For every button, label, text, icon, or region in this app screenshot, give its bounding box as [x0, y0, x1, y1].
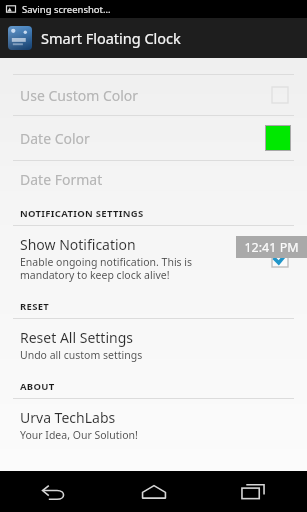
staticText: Urva TechLabs: [20, 408, 116, 427]
button[interactable]: Recent apps: [208, 471, 298, 512]
staticText: Saving screenshot…: [22, 3, 111, 16]
staticText: Undo all custom settings: [20, 348, 143, 362]
staticText: Show Notification: [20, 235, 136, 254]
staticText: NOTIFICATION SETTINGS: [20, 207, 144, 220]
staticText: Your Idea, Our Solution!: [20, 428, 138, 442]
button[interactable]: Back: [9, 471, 99, 512]
staticText: Date Format: [20, 170, 103, 189]
staticText: 12:41 PM: [244, 239, 299, 256]
staticText: Use Custom Color: [20, 86, 139, 105]
button[interactable]: Reset All Settings: [0, 319, 307, 371]
button[interactable]: Floating clock: [236, 236, 307, 258]
button[interactable]: Use Custom Color: [0, 75, 307, 115]
button[interactable]: Show Notification: [0, 226, 307, 291]
button[interactable]: Checked: [269, 248, 291, 270]
button[interactable]: Urva TechLabs: [0, 399, 307, 451]
staticText: Enable ongoing notification. This is man…: [20, 255, 193, 282]
button[interactable]: Home: [109, 471, 199, 512]
button[interactable]: Unchecked: [269, 84, 291, 106]
staticText: ABOUT: [20, 380, 55, 393]
staticText: Smart Floating Clock: [41, 28, 181, 48]
staticText: Reset All Settings: [20, 328, 133, 347]
button[interactable]: Date Format: [0, 161, 307, 198]
staticText: Date Color: [20, 129, 90, 148]
button[interactable]: Date Color: [0, 116, 307, 160]
staticText: RESET: [20, 300, 50, 313]
